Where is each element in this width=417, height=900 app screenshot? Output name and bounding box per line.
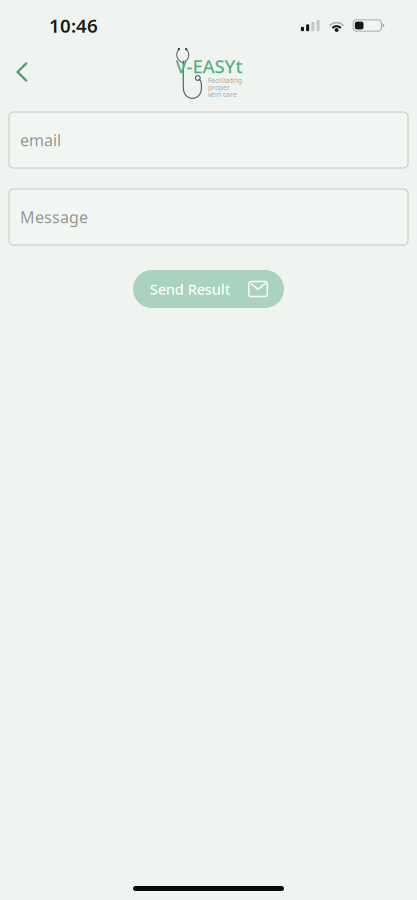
staticText: V-EASYt bbox=[175, 53, 242, 78]
button[interactable]: Back bbox=[0, 50, 44, 94]
staticText: Send Result bbox=[150, 279, 231, 299]
staticText: vein care bbox=[208, 90, 237, 99]
staticText: proper bbox=[208, 83, 230, 92]
staticText: Message bbox=[20, 206, 88, 228]
button[interactable]: email bbox=[9, 112, 408, 168]
button[interactable]: Send Result bbox=[133, 270, 284, 308]
button[interactable]: Message bbox=[9, 189, 408, 245]
staticText: email bbox=[20, 129, 61, 151]
staticText: 10:46 bbox=[49, 13, 98, 38]
staticText: Facilitating bbox=[208, 76, 242, 85]
